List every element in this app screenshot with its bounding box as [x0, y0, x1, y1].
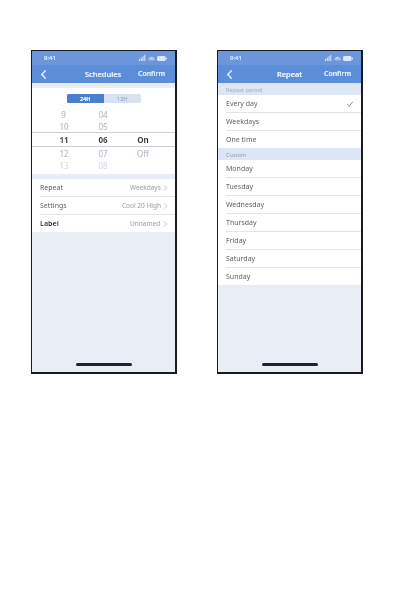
- staticText: Confirm: [324, 69, 352, 79]
- button[interactable]: Friday: [218, 232, 361, 249]
- staticText: 04: [98, 109, 108, 120]
- staticText: 12: [59, 148, 69, 159]
- staticText: Weekdays: [226, 117, 260, 127]
- button[interactable]: Saturday: [218, 250, 361, 267]
- staticText: Saturday: [226, 254, 256, 264]
- button[interactable]: Label: [32, 215, 175, 232]
- staticText: Thursday: [226, 218, 257, 228]
- staticText: Repeat period: [226, 86, 263, 93]
- staticText: Off: [137, 148, 149, 159]
- staticText: Wednesday: [226, 200, 265, 210]
- staticText: 9: [61, 109, 66, 120]
- staticText: 11: [59, 134, 69, 145]
- staticText: Repeat: [40, 183, 64, 193]
- staticText: 24H: [80, 95, 91, 102]
- button[interactable]: Wednesday: [218, 196, 361, 213]
- button[interactable]: Back: [218, 65, 240, 83]
- staticText: 10: [59, 121, 69, 132]
- button[interactable]: Confirm: [129, 65, 175, 83]
- button[interactable]: One time: [218, 131, 361, 148]
- staticText: 12H: [117, 95, 128, 102]
- staticText: One time: [226, 135, 257, 145]
- staticText: Weekdays: [130, 183, 161, 192]
- staticText: Every day: [226, 99, 258, 109]
- button[interactable]: Tuesday: [218, 178, 361, 195]
- staticText: Cool 20 High: [122, 201, 161, 210]
- staticText: Settings: [40, 201, 67, 211]
- staticText: Monday: [226, 164, 253, 174]
- button[interactable]: Thursday: [218, 214, 361, 231]
- staticText: Custom: [226, 151, 246, 158]
- staticText: 07: [98, 148, 108, 159]
- button[interactable]: Confirm: [315, 65, 361, 83]
- staticText: Unnamed: [130, 219, 161, 228]
- staticText: Confirm: [138, 69, 166, 79]
- staticText: Sunday: [226, 272, 251, 282]
- button[interactable]: Settings: [32, 197, 175, 214]
- button[interactable]: Back: [32, 65, 54, 83]
- staticText: Friday: [226, 236, 247, 246]
- button[interactable]: 24H: [67, 94, 104, 103]
- staticText: On: [137, 134, 149, 145]
- staticText: 13: [59, 160, 69, 171]
- staticText: Tuesday: [226, 182, 253, 192]
- button[interactable]: Weekdays: [218, 113, 361, 130]
- staticText: 08: [98, 160, 108, 171]
- staticText: Label: [40, 219, 59, 229]
- staticText: Schedules: [85, 69, 122, 79]
- button[interactable]: 12H: [104, 94, 141, 103]
- staticText: 9:41: [44, 54, 56, 62]
- button[interactable]: Repeat: [32, 179, 175, 196]
- staticText: 06: [98, 134, 108, 145]
- button[interactable]: Monday: [218, 160, 361, 177]
- staticText: 9:41: [230, 54, 242, 62]
- staticText: 05: [98, 121, 108, 132]
- button[interactable]: Every day: [218, 95, 361, 112]
- staticText: Repeat: [277, 69, 303, 79]
- button[interactable]: Sunday: [218, 268, 361, 285]
